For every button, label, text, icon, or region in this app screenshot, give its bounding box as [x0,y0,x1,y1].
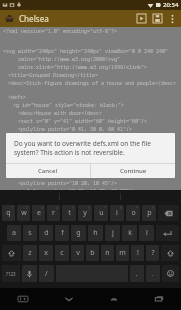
button[interactable]: a [7,225,21,241]
staticText: 2 [26,205,29,210]
staticText: 1 [11,205,14,210]
button[interactable]: r [47,205,60,221]
staticText: Do you want to overwrite defs.xml on the… [14,139,167,157]
staticText: xmlns:xlink="http://www.w3.org/1999/xlin… [18,64,148,71]
button[interactable]: Recents [136,288,181,310]
button[interactable]: f [55,225,69,241]
staticText: Chelsea [19,13,133,24]
button[interactable]: p [142,205,156,221]
button[interactable]: q [2,205,15,221]
button[interactable]: t [62,205,76,221]
button[interactable]: Save [149,10,165,27]
staticText: <polyline points="10 20, 10 45"/> [18,180,118,187]
staticText: z [28,248,32,258]
button[interactable]: v [71,245,84,261]
staticText: o [131,208,136,218]
staticText: / [45,269,48,279]
staticText: j [112,228,114,238]
button[interactable]: ?123 [2,265,20,282]
staticText: v [76,248,80,258]
staticText: xmlns="http://www.w3.org/2000/svg" [18,56,121,63]
staticText: 0 [152,205,155,210]
staticText: c [60,248,64,258]
button[interactable]: Continue [91,164,175,178]
button[interactable]: z [23,245,37,261]
staticText: Continue [120,167,147,175]
button[interactable]: g [71,225,86,241]
staticText: 6 [88,205,91,210]
button[interactable]: Shift [2,245,21,261]
staticText: <defs> [8,94,27,101]
staticText: <?xml version="1.0" encoding="utf-8"?> [3,28,118,35]
staticText: x [44,248,48,258]
button[interactable]: ? [146,245,159,261]
button[interactable]: j [105,225,120,241]
staticText: t [68,208,71,218]
button[interactable]: s [23,225,37,241]
staticText: 9 [136,205,139,210]
staticText: <g id="man" style="fill: none; stroke: b… [13,156,155,163]
staticText: <polyline points="0 41, 30 0, 60 41"/> [18,126,133,133]
staticText: 20:54 [163,1,179,9]
button[interactable]: c [55,245,69,261]
button[interactable]: Back [46,288,91,310]
staticText: m [119,248,126,258]
button[interactable]: l [139,225,154,241]
staticText: 4 [56,205,59,210]
staticText: i [116,208,118,218]
button[interactable]: m [116,245,129,261]
button[interactable]: e [32,205,45,221]
button[interactable]: Run [133,10,149,27]
button[interactable]: o [126,205,140,221]
button[interactable]: Home [91,288,136,310]
staticText: k [128,228,132,238]
staticText: y [83,208,87,218]
button[interactable]: Cancel [6,164,90,178]
button[interactable]: k [122,225,137,241]
button[interactable]: y [78,205,92,221]
staticText: l [146,228,148,238]
staticText: b [90,248,95,258]
button[interactable]: Enter [156,225,179,241]
staticText: r [52,208,55,218]
staticText: <polyline points="0 25, 10 30, 20 25"/> [18,188,136,190]
button[interactable]: b [86,245,99,261]
staticText: </g> [13,142,26,149]
staticText: <title>Grouped Drawing</title> [8,72,99,79]
staticText: 3 [41,205,44,210]
button[interactable]: / [39,265,54,282]
staticText: ! [137,248,139,258]
button[interactable]: x [39,245,53,261]
button[interactable]: n [101,245,114,261]
button[interactable]: Voice input [22,265,37,282]
button[interactable]: u [94,205,108,221]
staticText: ?123 [6,271,16,277]
button[interactable]: Hide keyboard [0,288,46,310]
staticText: h [93,228,98,238]
button[interactable]: Shift [161,245,179,261]
staticText: u [99,208,104,218]
button[interactable]: , [130,265,144,282]
staticText: w [21,208,27,218]
button[interactable]: w [17,205,30,221]
staticText: a [12,228,16,238]
button[interactable]: Emoji [162,265,179,282]
button[interactable]: ! [131,245,144,261]
button[interactable]: Backspace [158,205,179,221]
staticText: 7 [104,205,107,210]
staticText: n [105,248,110,258]
button[interactable]: h [88,225,103,241]
button[interactable]: d [39,225,53,241]
staticText: e [37,208,41,218]
staticText: p [147,208,152,218]
staticText: <svg width="240px" height="240px" viewBo… [3,48,169,55]
button[interactable]: i [110,205,124,221]
button[interactable]: More options [165,10,179,27]
staticText: , [136,270,138,278]
